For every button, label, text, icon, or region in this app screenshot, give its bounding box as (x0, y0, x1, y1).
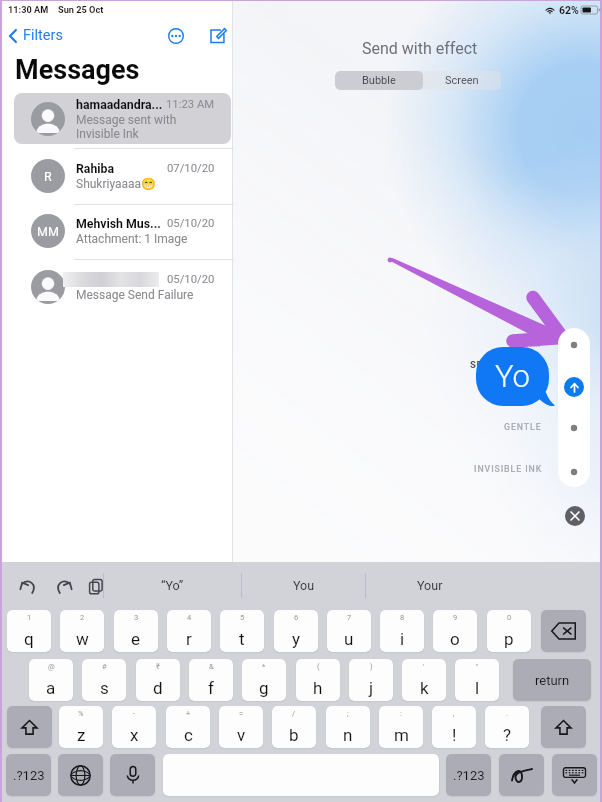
button[interactable]: 4 (167, 610, 211, 652)
button[interactable]: Handwriting (499, 754, 544, 796)
staticText: y (292, 629, 301, 649)
button[interactable]: Redo (51, 574, 75, 598)
staticText: return (535, 673, 570, 688)
button[interactable]: / (272, 706, 316, 748)
button[interactable]: 9 (433, 610, 477, 652)
staticText: hamaadandra... (76, 98, 163, 112)
button[interactable]: . (485, 706, 529, 748)
staticText: SLAM (515, 339, 542, 349)
button[interactable]: You (241, 562, 366, 609)
staticText: Messages (15, 54, 140, 86)
staticText: GENTLE (504, 422, 542, 432)
button[interactable]: Close (565, 506, 585, 526)
staticText: h (313, 678, 323, 698)
button[interactable]: return (513, 659, 591, 701)
button[interactable]: ; (326, 706, 370, 748)
button[interactable]: hamaadandra... (14, 93, 231, 144)
button[interactable]: & (189, 659, 233, 701)
button[interactable]: Hide keyboard (552, 754, 597, 796)
staticText: ' (423, 662, 425, 671)
button[interactable]: Dictate (110, 754, 155, 796)
staticText: * (262, 662, 266, 671)
button[interactable]: = (219, 706, 263, 748)
button[interactable]: : (379, 706, 423, 748)
staticText: & (209, 662, 214, 671)
other: Handwriting (509, 763, 534, 788)
staticText: Shukriyaaaa😁 (76, 177, 157, 191)
button[interactable]: Filters (6, 23, 65, 48)
button[interactable]: R (14, 150, 231, 201)
button[interactable]: 1 (7, 610, 51, 652)
staticText: v (237, 725, 246, 745)
button[interactable]: 7 (327, 610, 371, 652)
button[interactable]: .?123 (6, 754, 51, 796)
button[interactable]: Compose new message (204, 22, 231, 49)
staticText: x (130, 725, 139, 745)
staticText: , (453, 709, 455, 718)
staticText: % (78, 709, 84, 718)
button[interactable]: More options (162, 22, 189, 49)
button[interactable]: Screen (423, 71, 501, 90)
button[interactable]: 05/10/20 (14, 261, 231, 312)
button[interactable]: 0 (487, 610, 531, 652)
button[interactable]: " (455, 659, 499, 701)
button[interactable]: ₹ (136, 659, 180, 701)
button[interactable]: 6 (274, 610, 318, 652)
staticText: b (289, 725, 299, 745)
button[interactable]: ) (349, 659, 393, 701)
button[interactable]: Bubble (335, 71, 423, 90)
button[interactable]: 2 (60, 610, 104, 652)
button[interactable]: ( (296, 659, 340, 701)
button[interactable]: Send (564, 377, 584, 397)
staticText: + (186, 709, 191, 718)
button[interactable]: “Yo” (103, 562, 241, 609)
button[interactable]: 8 (380, 610, 424, 652)
staticText: Mehvish Mus... (76, 217, 161, 231)
button[interactable]: % (59, 706, 103, 748)
button[interactable]: * (242, 659, 286, 701)
button[interactable]: 3 (114, 610, 158, 652)
staticText: u (344, 629, 354, 649)
staticText: 5 (240, 613, 245, 622)
other: Shift (555, 719, 572, 736)
button[interactable]: Paste (84, 574, 108, 598)
button[interactable]: MM (14, 206, 231, 256)
staticText: " (476, 662, 479, 671)
staticText: l (475, 678, 480, 698)
button[interactable]: , (432, 706, 476, 748)
staticText: : (400, 709, 402, 718)
button[interactable]: ' (402, 659, 446, 701)
staticText: r (186, 629, 192, 649)
button[interactable]: Undo (16, 574, 40, 598)
staticText: 6 (294, 613, 299, 622)
other: Change keyboard language (70, 765, 91, 786)
staticText: 9 (453, 613, 458, 622)
button[interactable]: + (166, 706, 210, 748)
staticText: Invisible Ink (76, 127, 139, 141)
button[interactable]: Shift (7, 706, 52, 748)
button[interactable]: Change keyboard language (58, 754, 103, 796)
staticText: @ (48, 662, 55, 671)
button[interactable]: # (82, 659, 126, 701)
button[interactable]: - (112, 706, 156, 748)
other: Backspace (551, 622, 576, 640)
button[interactable]: Backspace (541, 610, 586, 652)
staticText: 11:23 AM (166, 98, 215, 111)
staticText: Yo (495, 358, 530, 394)
button[interactable]: 5 (220, 610, 264, 652)
button[interactable]: @ (29, 659, 73, 701)
other: Hide keyboard (562, 765, 587, 785)
button[interactable]: Shift (541, 706, 586, 748)
staticText: n (343, 725, 353, 745)
staticText: ( (317, 662, 320, 671)
staticText: INVISIBLE INK (474, 464, 543, 474)
staticText: Send with effect (362, 39, 478, 58)
staticText: Rahiba (76, 162, 115, 176)
button[interactable]: .?123 (446, 754, 491, 796)
staticText: 1 (27, 613, 32, 622)
button[interactable]: Your (365, 562, 494, 609)
staticText: # (102, 662, 107, 671)
staticText: e (131, 629, 141, 649)
staticText: 8 (400, 613, 405, 622)
